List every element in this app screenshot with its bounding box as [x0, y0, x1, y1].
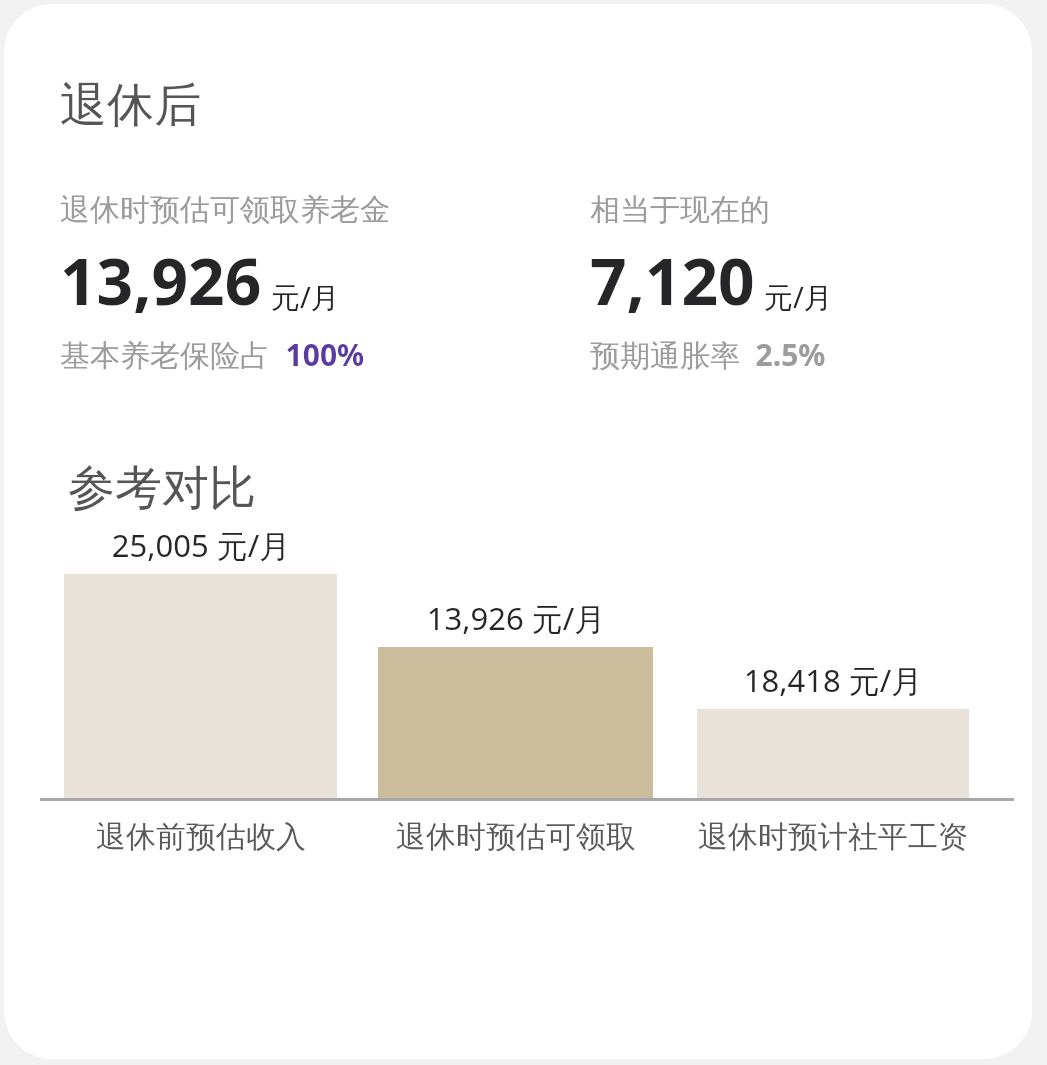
staticText: 7,120: [590, 237, 755, 324]
staticText: 参考对比: [68, 459, 256, 518]
staticText: 相当于现在的: [590, 191, 770, 229]
staticText: 预期通胀率 2.5%: [590, 334, 826, 375]
staticText: 退休时预计社平工资: [663, 818, 1003, 856]
staticText: 退休后: [60, 76, 201, 135]
staticText: 基本养老保险占 100%: [60, 334, 365, 375]
staticText: 元/月: [764, 277, 833, 317]
staticText: 25,005 元/月: [51, 524, 351, 566]
staticText: 13,926: [60, 237, 262, 324]
staticText: 元/月: [271, 277, 340, 317]
staticText: 13,926 元/月: [366, 597, 666, 639]
staticText: 18,418 元/月: [683, 659, 983, 701]
button[interactable]: 退休后: [4, 4, 1032, 1059]
staticText: 退休前预估收入: [31, 818, 371, 856]
staticText: 退休时预估可领取养老金: [60, 191, 390, 229]
staticText: 退休时预估可领取: [346, 818, 686, 856]
